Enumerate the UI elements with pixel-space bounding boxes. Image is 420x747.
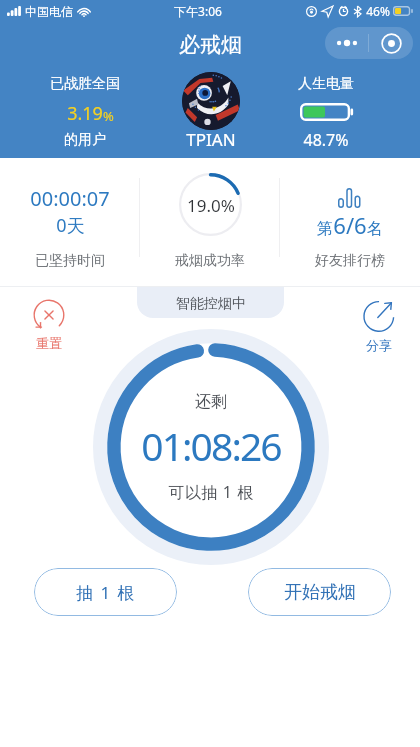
button[interactable]: 19.0% bbox=[140, 158, 280, 286]
staticText: 00:00:07 bbox=[30, 185, 110, 212]
staticText: 6/6 bbox=[333, 210, 367, 240]
staticText: 分享 bbox=[366, 337, 392, 353]
button[interactable]: More options bbox=[325, 27, 368, 59]
button[interactable]: 00:00:07 bbox=[0, 158, 140, 286]
button[interactable]: Share bbox=[355, 297, 403, 353]
staticText: 3.19 bbox=[67, 101, 103, 126]
staticText: % bbox=[103, 107, 114, 125]
staticText: 已坚持时间 bbox=[35, 252, 105, 270]
staticText: 还剩 bbox=[195, 392, 227, 412]
button[interactable]: Reset bbox=[25, 299, 73, 351]
staticText: 的用户 bbox=[64, 131, 106, 149]
button[interactable]: 第 bbox=[280, 158, 420, 286]
button[interactable]: 开始戒烟 bbox=[248, 568, 391, 616]
staticText: 智能控烟中 bbox=[176, 295, 246, 313]
staticText: 48.7% bbox=[303, 129, 349, 151]
staticText: 已战胜全国 bbox=[50, 75, 120, 93]
staticText: 46% bbox=[366, 3, 390, 19]
staticText: TPIAN bbox=[186, 128, 236, 151]
button[interactable]: 智能控烟中 bbox=[137, 287, 284, 318]
staticText: 中国电信 bbox=[25, 4, 73, 19]
staticText: 好友排行榜 bbox=[315, 252, 385, 270]
staticText: 必戒烟 bbox=[179, 32, 242, 58]
staticText: 19.0% bbox=[187, 194, 235, 217]
staticText: 人生电量 bbox=[298, 75, 354, 93]
staticText: 戒烟成功率 bbox=[175, 252, 245, 270]
button[interactable]: 抽 1 根 bbox=[34, 568, 177, 616]
staticText: 可以抽 1 根 bbox=[168, 481, 254, 503]
staticText: 重置 bbox=[36, 335, 62, 351]
staticText: 第 bbox=[317, 219, 333, 239]
button[interactable]: Close mini program bbox=[369, 27, 413, 59]
staticText: 0天 bbox=[56, 213, 85, 238]
staticText: 名 bbox=[367, 219, 383, 239]
staticText: 01:08:26 bbox=[141, 419, 281, 472]
staticText: 下午3:06 bbox=[174, 3, 222, 19]
staticText: 开始戒烟 bbox=[284, 581, 356, 604]
staticText: 抽 1 根 bbox=[76, 581, 136, 604]
